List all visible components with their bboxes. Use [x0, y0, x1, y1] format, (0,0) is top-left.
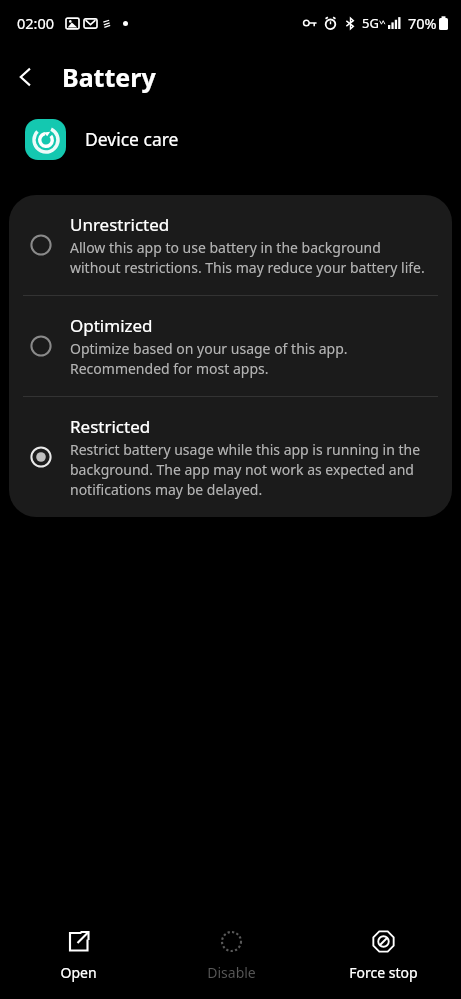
button[interactable]: Open	[3, 917, 153, 982]
button[interactable]: Force stop	[308, 917, 458, 982]
staticText: Restrict battery usage while this app is…	[70, 440, 434, 499]
button[interactable]: Unrestricted	[9, 195, 452, 295]
staticText: Open	[60, 963, 97, 982]
staticText: Optimized	[70, 314, 153, 337]
button[interactable]: Restricted	[9, 397, 452, 517]
staticText: 02:00	[17, 13, 55, 33]
staticText: 5G	[362, 14, 379, 32]
staticText: Allow this app to use battery in the bac…	[70, 238, 434, 277]
staticText: 70%	[408, 13, 437, 33]
button[interactable]: Back	[0, 51, 52, 103]
button[interactable]: Optimized	[9, 296, 452, 396]
staticText: Disable	[207, 963, 256, 982]
staticText: Restricted	[70, 415, 151, 438]
button[interactable]: Disable	[156, 917, 306, 982]
staticText: Force stop	[349, 963, 418, 982]
staticText: Device care	[85, 127, 179, 151]
staticText: Battery	[62, 60, 156, 94]
button[interactable]: Device care	[0, 108, 461, 170]
staticText: Optimize based on your usage of this app…	[70, 339, 434, 378]
staticText: Unrestricted	[70, 213, 170, 236]
